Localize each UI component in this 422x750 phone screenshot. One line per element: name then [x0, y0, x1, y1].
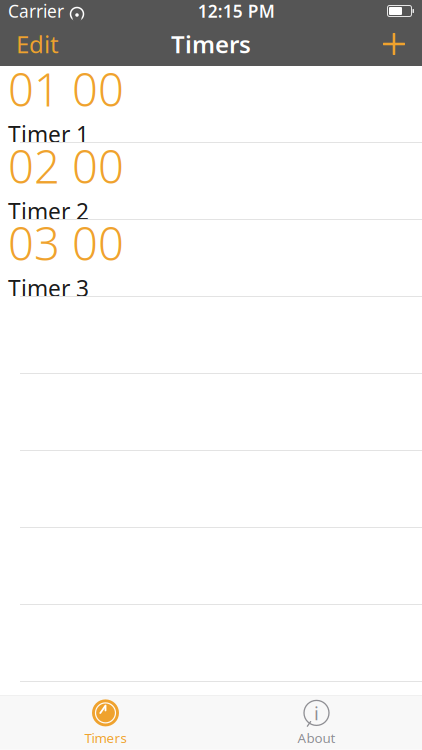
button[interactable]: 03 00 — [0, 220, 422, 297]
button[interactable]: 01 00 — [0, 66, 422, 143]
staticText: Timers — [171, 28, 251, 60]
staticText: 01 00 — [8, 59, 124, 119]
button[interactable]: Timers — [0, 696, 211, 750]
staticText: Timer 3 — [8, 273, 89, 303]
button[interactable]: Add Timer — [366, 22, 422, 66]
staticText: 03 00 — [8, 213, 124, 273]
staticText: i — [314, 700, 319, 725]
staticText: Timers — [84, 729, 126, 747]
staticText: 02 00 — [8, 136, 124, 196]
button[interactable]: i — [211, 696, 422, 750]
staticText: Timer 1 — [8, 119, 89, 149]
button[interactable]: 02 00 — [0, 143, 422, 220]
staticText: 12:15 PM — [198, 0, 275, 22]
staticText: About — [297, 729, 335, 747]
button[interactable]: Edit — [0, 22, 75, 66]
staticText: Carrier — [8, 0, 64, 22]
staticText: Edit — [16, 28, 59, 60]
staticText: Timer 2 — [8, 196, 89, 226]
